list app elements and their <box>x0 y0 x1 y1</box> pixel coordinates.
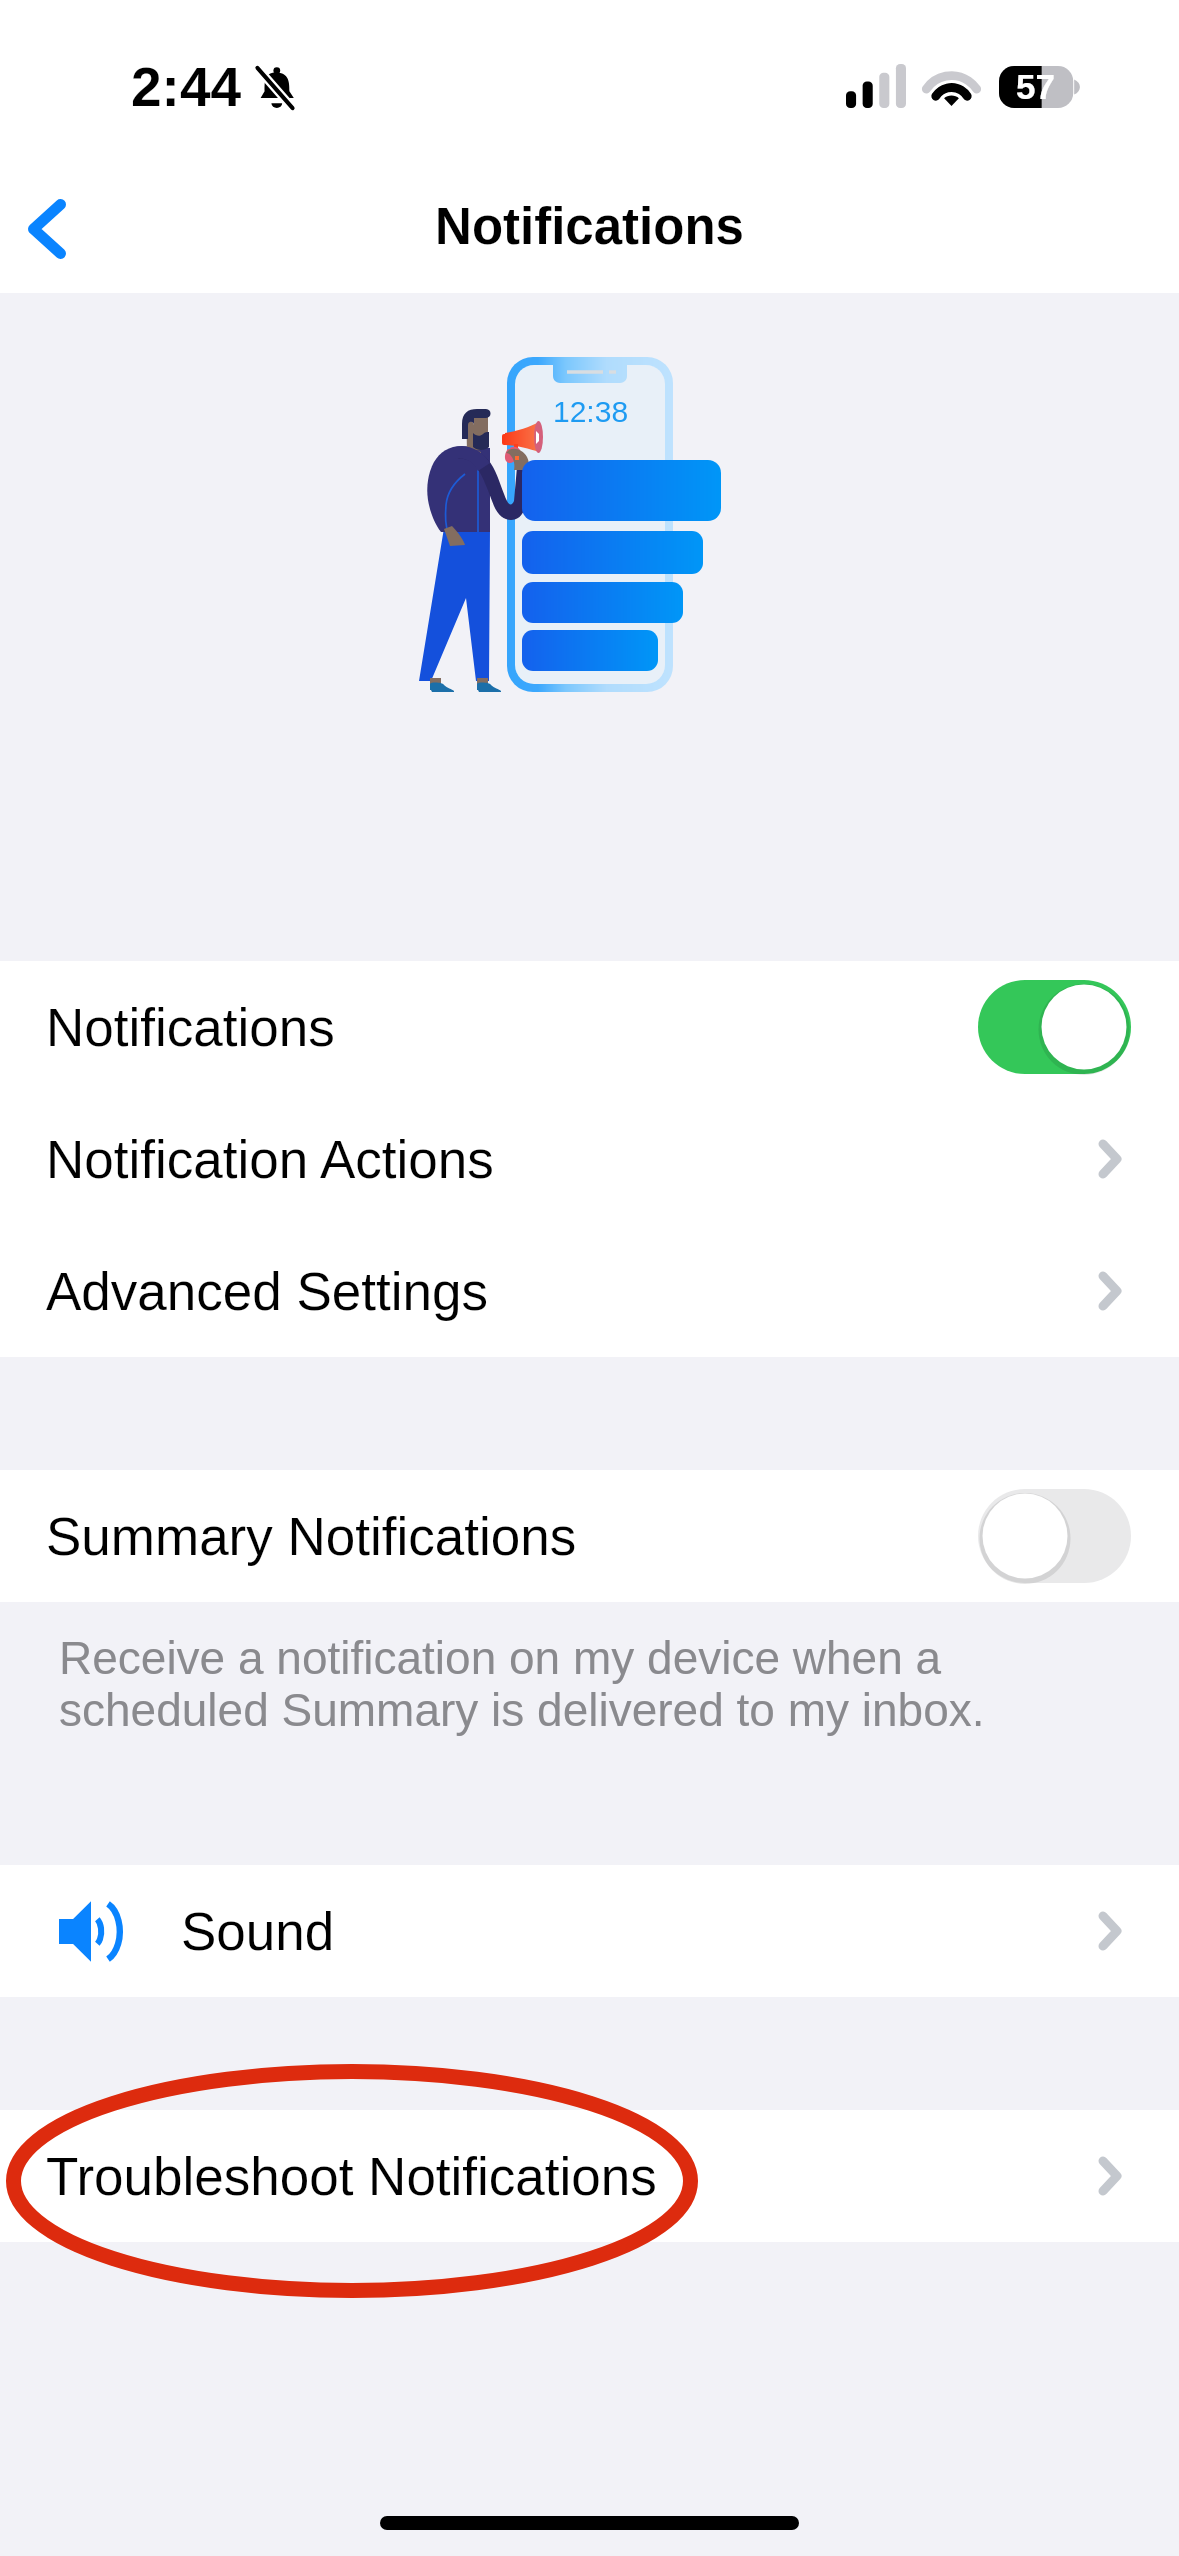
button[interactable]: Sound <box>0 1865 1179 1997</box>
button[interactable]: Troubleshoot Notifications <box>0 2110 1179 2242</box>
button[interactable]: Notifications <box>0 961 1179 1093</box>
staticText: Receive a notification on my device when… <box>59 1632 985 1736</box>
staticText: 57 <box>1016 67 1055 106</box>
button[interactable]: Notification Actions <box>0 1093 1179 1225</box>
staticText: Sound <box>181 1902 335 1961</box>
staticText: 12:38 <box>553 395 629 429</box>
staticText: Summary Notifications <box>46 1507 577 1566</box>
staticText: Notifications <box>46 998 335 1057</box>
staticText: Troubleshoot Notifications <box>46 2147 657 2206</box>
staticText: Advanced Settings <box>46 1262 488 1321</box>
button[interactable]: Summary Notifications <box>0 1470 1179 1602</box>
staticText: Notifications <box>435 198 744 255</box>
button[interactable]: Back <box>0 179 97 279</box>
staticText: 2:44 <box>131 56 242 117</box>
staticText: Notification Actions <box>46 1130 494 1189</box>
button[interactable]: Advanced Settings <box>0 1225 1179 1357</box>
